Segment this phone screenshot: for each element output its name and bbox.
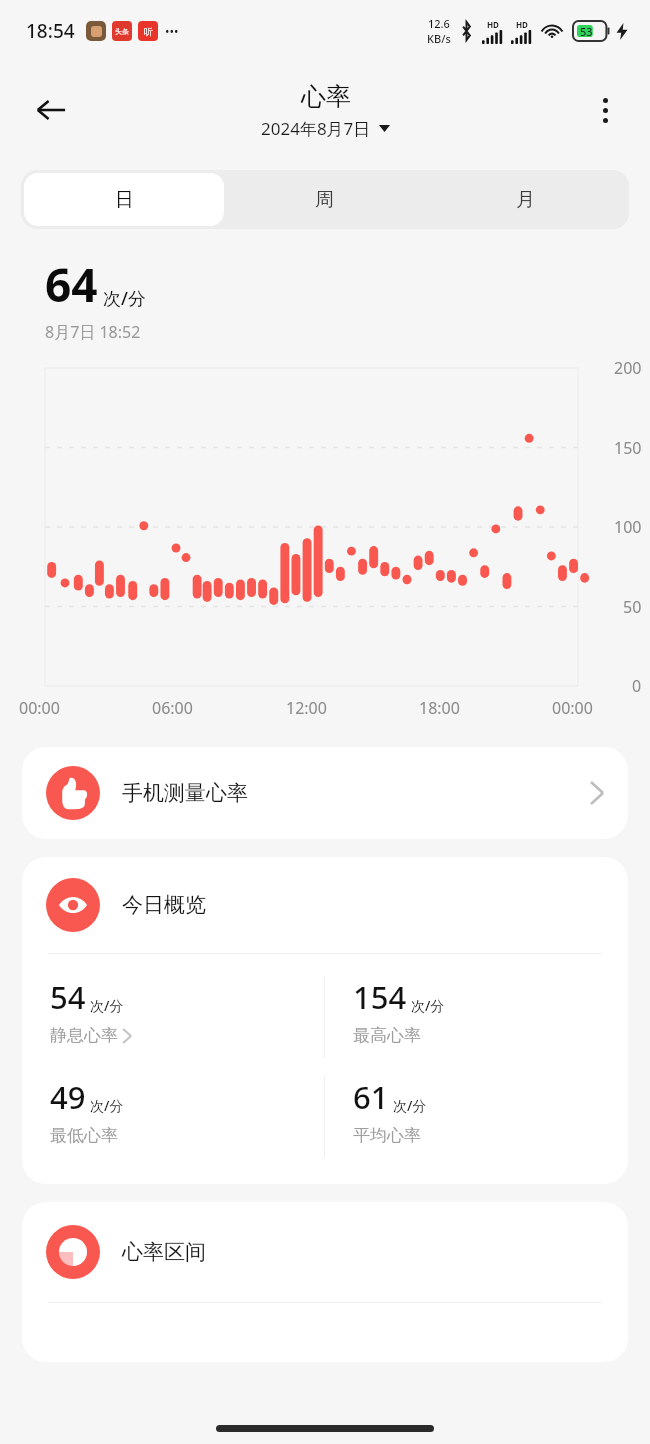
button[interactable]: 周 (224, 173, 425, 226)
button[interactable]: 2024年8月7日 (261, 117, 390, 140)
button[interactable]: More options (578, 83, 632, 137)
staticText: 50 (623, 596, 642, 618)
staticText: 听 (144, 26, 153, 37)
button[interactable]: 今日概览 (46, 857, 604, 953)
staticText: 200 (614, 357, 642, 379)
staticText: 次/分 (393, 1096, 427, 1115)
staticText: 心率 (301, 81, 351, 112)
staticText: 最高心率 (353, 1025, 421, 1046)
staticText: HD (487, 19, 499, 30)
staticText: 周 (315, 188, 334, 212)
staticText: 61 (353, 1076, 389, 1118)
staticText: 53 (580, 24, 593, 39)
staticText: 64 (45, 253, 98, 316)
staticText: 150 (614, 437, 642, 459)
staticText: 49 (50, 1076, 86, 1118)
staticText: 8月7日 18:52 (45, 321, 141, 343)
staticText: 12:00 (286, 697, 327, 719)
staticText: 月 (516, 188, 535, 212)
staticText: 00:00 (19, 697, 60, 719)
staticText: 100 (614, 516, 642, 538)
staticText: KB/s (427, 31, 451, 46)
staticText: 心率区间 (122, 1239, 206, 1265)
button[interactable]: 61 (353, 1076, 628, 1146)
staticText: 平均心率 (353, 1125, 421, 1146)
button[interactable]: 日 (24, 173, 224, 226)
staticText: 54 (50, 976, 86, 1018)
button[interactable]: 心率区间 (46, 1202, 604, 1302)
staticText: 头条 (115, 27, 129, 36)
staticText: 18:00 (419, 697, 460, 719)
button[interactable]: Back (22, 81, 80, 139)
staticText: 0 (632, 675, 642, 697)
staticText: 次/分 (411, 996, 445, 1015)
button[interactable]: 月 (425, 173, 626, 226)
staticText: 次/分 (103, 286, 146, 311)
staticText: ••• (165, 23, 179, 39)
staticText: 次/分 (90, 996, 124, 1015)
staticText: 静息心率 (50, 1025, 118, 1046)
staticText: 今日概览 (122, 892, 206, 918)
button[interactable]: 手机测量心率 (22, 747, 628, 839)
staticText: 06:00 (152, 697, 193, 719)
staticText: HD (516, 19, 528, 30)
button[interactable]: 49 (50, 1076, 324, 1146)
button[interactable]: 154 (353, 976, 628, 1046)
staticText: 00:00 (552, 697, 593, 719)
staticText: 154 (353, 976, 407, 1018)
staticText: 最低心率 (50, 1125, 118, 1146)
staticText: 日 (115, 188, 134, 212)
staticText: 次/分 (90, 1096, 124, 1115)
staticText: 2024年8月7日 (261, 117, 371, 140)
staticText: 手机测量心率 (122, 780, 248, 806)
button[interactable]: 54 (50, 976, 324, 1046)
staticText: 12.6 (428, 16, 450, 31)
staticText: 18:54 (26, 18, 75, 44)
